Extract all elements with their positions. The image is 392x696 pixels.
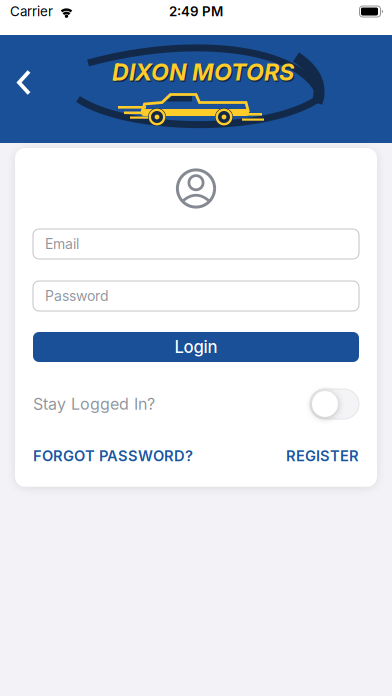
button[interactable] <box>9 60 39 104</box>
button[interactable]: FORGOT PASSWORD? <box>33 447 193 465</box>
staticText: Login <box>174 337 217 357</box>
staticText: Carrier <box>10 3 53 19</box>
staticText: FORGOT PASSWORD? <box>33 447 193 465</box>
button[interactable]: REGISTER <box>286 447 359 465</box>
staticText: Password <box>45 287 109 304</box>
staticText: DIXON MOTORS <box>112 58 294 86</box>
staticText: Stay Logged In? <box>33 394 155 414</box>
button[interactable]: Password <box>33 281 359 311</box>
staticText: DIXON MOTORS <box>113 59 295 87</box>
button[interactable] <box>310 389 359 419</box>
staticText: Email <box>45 235 79 252</box>
button[interactable]: Email <box>33 229 359 259</box>
staticText: REGISTER <box>286 447 359 465</box>
button[interactable]: Login <box>33 332 359 362</box>
staticText: 2:49 PM <box>169 3 223 19</box>
